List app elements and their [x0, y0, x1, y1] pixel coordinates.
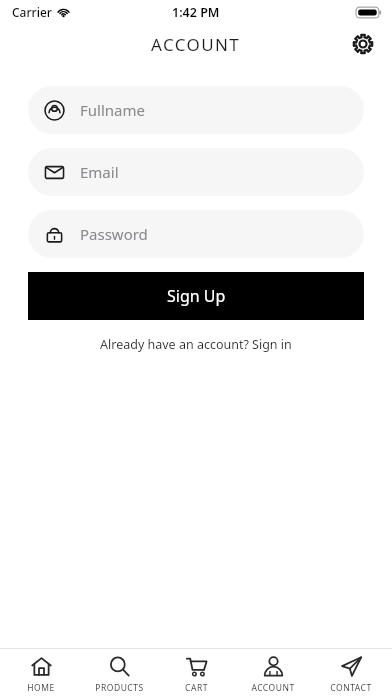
button[interactable]: Password: [28, 210, 364, 258]
staticText: Password: [80, 224, 148, 244]
button[interactable]: Email: [28, 148, 364, 196]
button[interactable]: ACCOUNT: [237, 652, 309, 694]
staticText: Already have an account? Sign in: [100, 336, 292, 353]
staticText: ACCOUNT: [251, 682, 295, 694]
button[interactable]: CART: [160, 652, 232, 694]
staticText: ACCOUNT: [151, 33, 241, 56]
button[interactable]: Already have an account? Sign in: [0, 336, 392, 353]
button[interactable]: PRODUCTS: [83, 652, 155, 694]
button[interactable]: CONTACT: [315, 652, 387, 694]
button[interactable]: Fullname: [28, 86, 364, 134]
staticText: CART: [185, 682, 208, 694]
button[interactable]: Settings: [346, 27, 380, 61]
button[interactable]: Sign Up: [28, 272, 364, 320]
staticText: CONTACT: [330, 682, 372, 694]
staticText: Sign Up: [167, 285, 226, 307]
staticText: Email: [80, 162, 119, 182]
staticText: 1:42 PM: [172, 4, 220, 21]
staticText: Carrier: [12, 4, 52, 20]
staticText: PRODUCTS: [95, 682, 144, 694]
button[interactable]: HOME: [5, 652, 77, 694]
staticText: HOME: [27, 682, 55, 694]
staticText: Fullname: [80, 100, 145, 120]
